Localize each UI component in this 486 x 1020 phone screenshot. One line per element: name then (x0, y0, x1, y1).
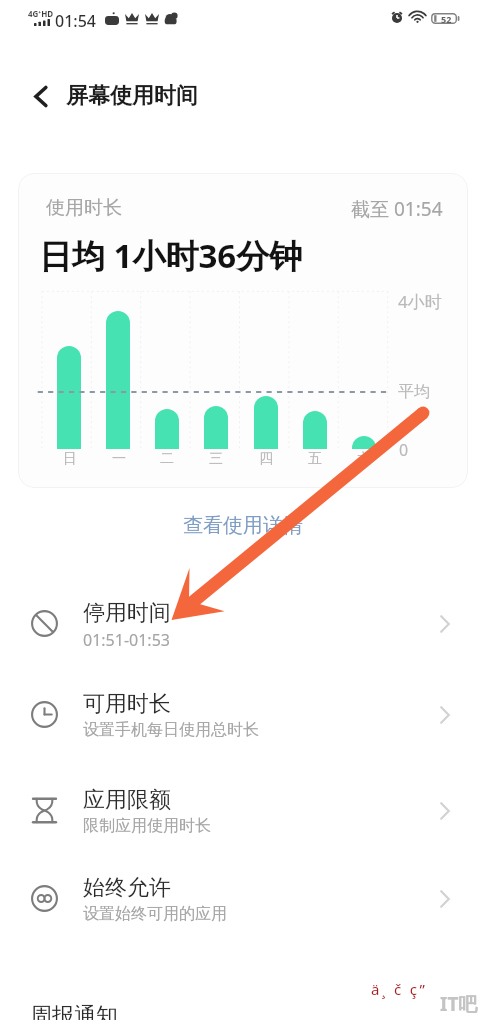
staticText: 0 (399, 439, 409, 461)
staticText: 停用时间 (83, 599, 171, 627)
staticText: 屏幕使用时间 (66, 82, 198, 110)
staticText: IT吧 (440, 991, 478, 1017)
staticText: 二 (160, 450, 174, 468)
button[interactable]: 查看使用详情 (169, 507, 317, 544)
button[interactable]: 使用时长 (18, 173, 468, 488)
staticText: 4G⁺HD (28, 8, 54, 19)
staticText: 4小时 (398, 290, 442, 313)
staticText: 日均 1小时36分钟 (39, 233, 303, 278)
staticText: 使用时长 (46, 196, 122, 220)
button[interactable]: 停用时间 (0, 578, 486, 670)
staticText: ä¸ č ç” (371, 979, 428, 999)
staticText: 可用时长 (83, 690, 171, 718)
staticText: 一 (112, 450, 126, 468)
button[interactable]: 应用限额 (0, 765, 486, 857)
staticText: 01:51-01:53 (83, 629, 170, 651)
staticText: 截至 01:54 (351, 196, 443, 222)
staticText: 三 (209, 450, 223, 468)
button[interactable]: 可用时长 (0, 669, 486, 761)
staticText: 01:54 (55, 10, 96, 32)
staticText: 查看使用详情 (183, 513, 303, 538)
staticText: 设置始终可用的应用 (83, 904, 227, 924)
staticText: 五 (308, 450, 322, 468)
staticText: 平均 (398, 382, 430, 402)
staticText: 52 (441, 13, 452, 25)
button[interactable]: Back (22, 78, 58, 114)
staticText: 应用限额 (83, 786, 171, 814)
staticText: 始终允许 (83, 874, 171, 902)
staticText: 周报通知 (30, 1002, 118, 1020)
staticText: 六 (357, 450, 371, 468)
staticText: 四 (259, 450, 273, 468)
staticText: 限制应用使用时长 (83, 816, 211, 836)
button[interactable]: 始终允许 (0, 853, 486, 945)
staticText: 设置手机每日使用总时长 (83, 720, 259, 740)
staticText: 日 (63, 450, 77, 468)
